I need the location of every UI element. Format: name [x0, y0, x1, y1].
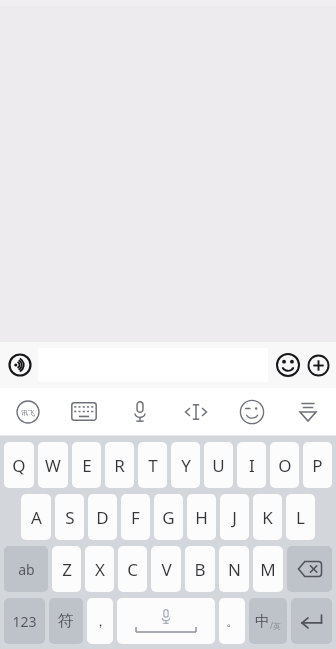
staticText: 。 — [226, 613, 239, 629]
button[interactable]: L — [286, 494, 315, 540]
button[interactable]: Space — [117, 598, 215, 644]
staticText: 符 — [58, 611, 74, 631]
button[interactable]: Y — [171, 442, 200, 488]
button[interactable]: F — [121, 494, 150, 540]
button[interactable]: E — [72, 442, 101, 488]
button[interactable]: H — [187, 494, 216, 540]
staticText: P — [312, 454, 323, 477]
staticText: F — [131, 506, 140, 529]
button[interactable]: ab — [4, 546, 48, 592]
staticText: W — [45, 454, 61, 477]
button[interactable]: 。 — [219, 598, 245, 644]
staticText: O — [278, 454, 292, 477]
staticText: S — [65, 506, 75, 529]
button[interactable]: A — [21, 494, 51, 540]
button[interactable]: 123 — [4, 598, 45, 644]
button[interactable]: Emoji — [275, 352, 301, 378]
button[interactable]: 符 — [49, 598, 83, 644]
staticText: Q — [12, 454, 26, 477]
button[interactable]: D — [88, 494, 117, 540]
staticText: L — [296, 506, 305, 529]
staticText: V — [161, 558, 172, 581]
staticText: E — [82, 454, 92, 477]
button[interactable]: Keyboard layout — [56, 388, 112, 435]
button[interactable]: Voice input — [5, 350, 35, 380]
staticText: G — [162, 506, 175, 529]
button[interactable]: ， — [87, 598, 113, 644]
button[interactable]: Enter — [291, 598, 332, 644]
button[interactable]: M — [253, 546, 283, 592]
staticText: M — [260, 558, 276, 581]
staticText: D — [96, 506, 109, 529]
staticText: Z — [62, 558, 72, 581]
button[interactable]: V — [151, 546, 181, 592]
staticText: K — [262, 506, 273, 529]
button[interactable]: Move cursor — [168, 388, 224, 435]
button[interactable]: B — [185, 546, 215, 592]
button[interactable]: U — [204, 442, 233, 488]
button[interactable]: I — [237, 442, 266, 488]
button[interactable]: iFlytek input — [0, 388, 56, 435]
staticText: ab — [18, 560, 35, 579]
button[interactable]: Voice input — [112, 388, 168, 435]
staticText: 讯飞 — [21, 408, 35, 417]
button[interactable]: K — [253, 494, 282, 540]
staticText: H — [195, 506, 208, 529]
staticText: A — [31, 506, 42, 529]
button[interactable]: R — [105, 442, 134, 488]
button[interactable]: O — [270, 442, 299, 488]
button[interactable]: X — [85, 546, 114, 592]
staticText: J — [232, 506, 237, 529]
button[interactable]: G — [154, 494, 183, 540]
button[interactable]: T — [138, 442, 167, 488]
staticText: Y — [181, 454, 191, 477]
button[interactable]: Q — [4, 442, 34, 488]
staticText: X — [95, 558, 105, 581]
staticText: N — [228, 558, 241, 581]
button[interactable]: J — [220, 494, 249, 540]
staticText: 123 — [12, 612, 37, 631]
staticText: U — [212, 454, 225, 477]
button[interactable]: C — [118, 546, 147, 592]
button[interactable]: Hide keyboard — [280, 388, 336, 435]
button[interactable]: Z — [52, 546, 81, 592]
button[interactable]: Backspace — [287, 546, 332, 592]
button[interactable]: N — [219, 546, 249, 592]
staticText: T — [148, 454, 158, 477]
button[interactable]: Add — [305, 352, 331, 378]
button[interactable]: Switch Chinese English — [249, 598, 287, 644]
staticText: ， — [94, 613, 107, 629]
staticText: 中 — [255, 612, 270, 631]
staticText: R — [114, 454, 125, 477]
staticText: /英 — [270, 620, 281, 631]
button[interactable]: Stickers — [224, 388, 280, 435]
staticText: I — [249, 454, 255, 477]
button[interactable]: S — [55, 494, 84, 540]
staticText: B — [194, 558, 206, 581]
staticText: C — [127, 558, 138, 581]
button[interactable]: W — [38, 442, 68, 488]
button[interactable]: P — [303, 442, 332, 488]
